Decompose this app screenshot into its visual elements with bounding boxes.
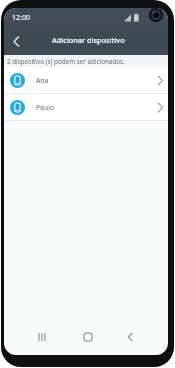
button[interactable]: [8, 33, 24, 49]
button[interactable]: [119, 326, 141, 348]
staticText: Ana: [36, 76, 49, 85]
staticText: 2 dispositivo (s) podem ser adicionados.: [7, 57, 125, 66]
staticText: 12:00: [12, 13, 30, 23]
staticText: Paulo: [36, 103, 54, 112]
button[interactable]: [77, 326, 99, 348]
button[interactable]: Ana: [4, 67, 168, 93]
button[interactable]: [31, 326, 53, 348]
button[interactable]: Paulo: [4, 94, 168, 120]
staticText: Adicionar dispositivo: [52, 35, 125, 45]
